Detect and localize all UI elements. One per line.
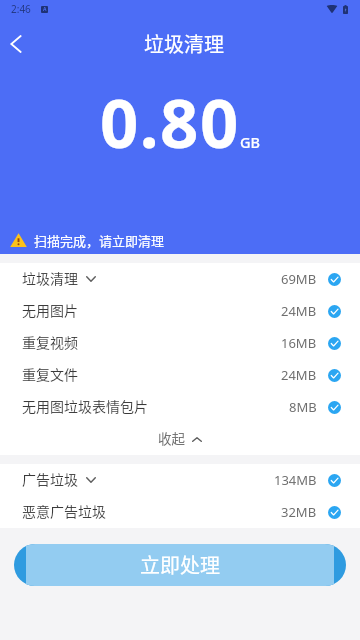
- button[interactable]: 重复视频: [0, 327, 360, 359]
- button[interactable]: 立即处理: [14, 544, 346, 586]
- button[interactable]: Back: [0, 23, 37, 65]
- staticText: 32MB: [281, 503, 317, 521]
- button[interactable]: 重复文件: [0, 359, 360, 391]
- staticText: 134MB: [274, 471, 317, 489]
- staticText: 恶意广告垃圾: [22, 501, 106, 521]
- staticText: 垃圾清理: [22, 268, 78, 288]
- staticText: 0.80: [100, 76, 240, 167]
- staticText: 重复文件: [22, 364, 78, 384]
- staticText: 2:46: [11, 2, 31, 16]
- staticText: 重复视频: [22, 332, 78, 352]
- staticText: 立即处理: [140, 550, 220, 579]
- staticText: 69MB: [281, 270, 317, 288]
- staticText: 无用图片: [22, 300, 78, 320]
- button[interactable]: 无用图垃圾表情包片: [0, 391, 360, 423]
- button[interactable]: 无用图片: [0, 295, 360, 327]
- staticText: 16MB: [281, 334, 317, 352]
- staticText: 24MB: [281, 366, 317, 384]
- button[interactable]: 垃圾清理: [0, 263, 360, 295]
- staticText: A: [43, 6, 47, 13]
- staticText: 收起: [158, 428, 185, 448]
- button[interactable]: 广告垃圾: [0, 464, 360, 496]
- staticText: 广告垃圾: [22, 469, 78, 489]
- staticText: 垃圾清理: [144, 29, 224, 58]
- staticText: 无用图垃圾表情包片: [22, 396, 148, 416]
- staticText: GB: [240, 132, 261, 152]
- button[interactable]: 收起: [0, 423, 360, 455]
- staticText: 24MB: [281, 302, 317, 320]
- staticText: 扫描完成，请立即清理: [34, 231, 165, 250]
- button[interactable]: 恶意广告垃圾: [0, 496, 360, 528]
- staticText: 8MB: [289, 398, 317, 416]
